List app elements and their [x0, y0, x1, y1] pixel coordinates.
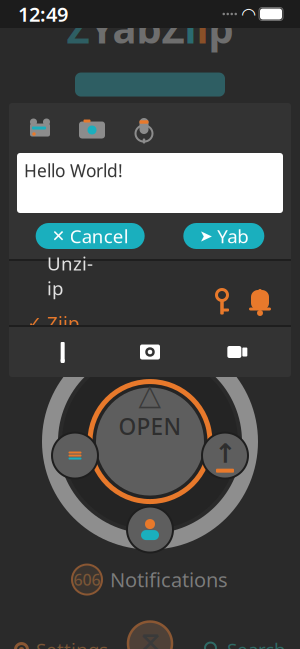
staticText: Search — [227, 637, 286, 649]
staticText: Cancel — [70, 224, 129, 248]
button[interactable]: Camera — [106, 341, 194, 363]
staticText: ⧖ — [140, 631, 159, 649]
staticText: YabZ — [89, 1, 184, 54]
button[interactable]: Draw — [19, 341, 106, 363]
button[interactable] — [29, 251, 110, 300]
staticText: 606 — [73, 569, 100, 590]
staticText: ✕ — [52, 227, 65, 245]
staticText: OPEN — [118, 411, 181, 441]
button[interactable]: ✕ — [36, 223, 145, 249]
staticText: Hello World! — [24, 159, 123, 182]
staticText: 12:49 — [18, 1, 68, 27]
button[interactable]: Video — [194, 341, 281, 363]
button[interactable]: Notifications — [247, 288, 273, 316]
button[interactable]: ZYabZiip home — [128, 622, 172, 649]
staticText: ➤ — [199, 227, 212, 245]
staticText: i — [184, 1, 196, 54]
staticText: Notifications — [110, 566, 228, 593]
button[interactable]: Record video — [23, 115, 57, 145]
button[interactable]: ✓ — [29, 310, 110, 335]
staticText: ↑ — [214, 438, 236, 469]
staticText: Yab — [217, 224, 248, 248]
staticText: i — [196, 1, 208, 54]
staticText: ✓ — [27, 313, 42, 333]
staticText: Ziip — [47, 310, 79, 335]
button[interactable]: Settings — [0, 637, 108, 649]
button[interactable]: Password — [211, 288, 233, 316]
staticText: Z — [66, 1, 89, 54]
button[interactable]: Search — [203, 637, 300, 649]
staticText: Settings — [36, 637, 108, 649]
button[interactable]: Take photo — [75, 115, 109, 145]
staticText: Unziip — [47, 251, 93, 300]
staticText: p — [208, 1, 233, 54]
button[interactable]: Record audio — [127, 115, 161, 145]
staticText: △ — [138, 378, 161, 411]
staticText: ◠ — [242, 4, 255, 24]
button[interactable]: ➤ — [183, 223, 264, 249]
